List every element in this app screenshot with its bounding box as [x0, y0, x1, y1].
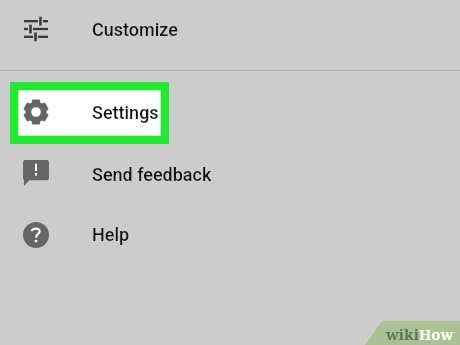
button[interactable]: Customize: [0, 0, 460, 70]
other: Help: [23, 222, 49, 248]
button[interactable]: Send feedback: [0, 143, 460, 204]
other: Send feedback: [23, 160, 49, 186]
staticText: Customize: [92, 19, 178, 40]
staticText: Settings: [92, 102, 159, 123]
staticText: Send feedback: [92, 164, 212, 185]
button[interactable]: Settings: [0, 82, 460, 143]
staticText: How: [419, 324, 454, 344]
staticText: wiki: [386, 324, 419, 344]
staticText: Help: [92, 224, 130, 245]
button[interactable]: Help: [0, 204, 460, 265]
other: Customize: [24, 18, 48, 40]
other: Settings: [23, 99, 49, 125]
